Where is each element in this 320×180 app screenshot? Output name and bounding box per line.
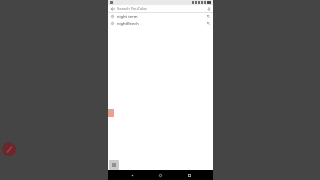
button[interactable]: Back	[108, 5, 213, 12]
button[interactable]: night term	[108, 13, 213, 20]
button[interactable]: Floating control	[109, 160, 119, 170]
staticText: night term	[117, 14, 206, 19]
button[interactable]: Insert suggestion	[206, 14, 211, 19]
staticText: nightfleech	[117, 21, 206, 26]
button[interactable]: Back	[110, 6, 115, 11]
button[interactable]: Back	[128, 171, 137, 180]
button[interactable]: Voice search	[206, 6, 211, 11]
button[interactable]: Insert suggestion	[206, 21, 211, 26]
button[interactable]: nightfleech	[108, 20, 213, 27]
button[interactable]: Recent apps	[185, 171, 194, 180]
button[interactable]: Screen record badge	[2, 142, 16, 156]
button[interactable]: Home	[156, 171, 165, 180]
staticText: Search YouTube	[117, 6, 206, 11]
